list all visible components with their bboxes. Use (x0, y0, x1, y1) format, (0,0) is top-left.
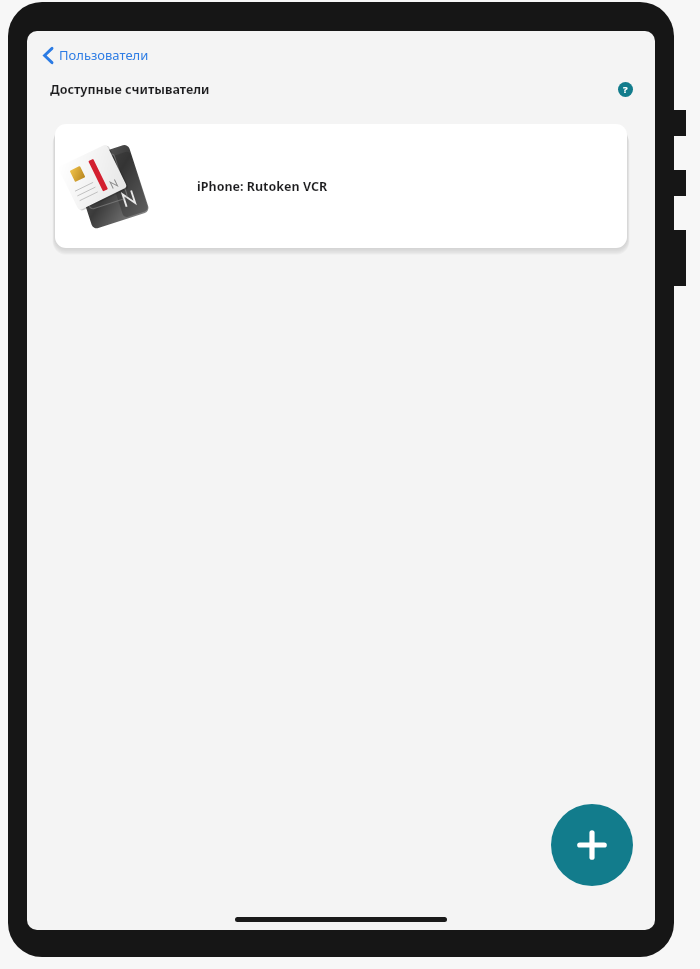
button[interactable]: Add reader (551, 804, 633, 886)
button[interactable]: Help (613, 77, 637, 101)
staticText: Доступные считыватели (50, 81, 210, 98)
staticText: iPhone: Rutoken VCR (197, 178, 328, 195)
staticText: Пользователи (59, 46, 149, 64)
button[interactable]: iPhone: Rutoken VCR (55, 124, 627, 248)
staticText: ? (623, 83, 628, 96)
button[interactable]: Пользователи (39, 43, 153, 67)
